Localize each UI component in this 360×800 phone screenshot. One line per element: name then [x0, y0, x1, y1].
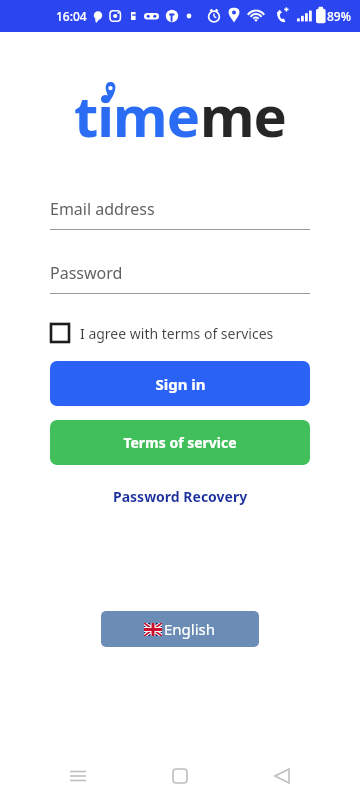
button[interactable]: Back: [258, 752, 306, 800]
button[interactable]: I agree with terms of services: [50, 323, 310, 343]
button[interactable]: English: [101, 611, 259, 647]
button[interactable]: Sign in: [50, 361, 310, 406]
staticText: 89%: [327, 8, 351, 24]
button[interactable]: Email address: [50, 198, 310, 230]
button[interactable]: Password Recovery: [0, 487, 360, 506]
staticText: me: [200, 77, 287, 153]
staticText: time: [74, 77, 200, 153]
button[interactable]: Recent apps: [54, 752, 102, 800]
button[interactable]: Home: [156, 752, 204, 800]
staticText: Sign in: [155, 374, 206, 394]
staticText: English: [164, 619, 216, 639]
button[interactable]: Password: [50, 262, 310, 294]
staticText: Password Recovery: [113, 487, 248, 506]
staticText: 16:04: [56, 8, 87, 24]
staticText: Email address: [50, 198, 155, 220]
staticText: Terms of service: [123, 433, 237, 452]
button[interactable]: Terms of service: [50, 420, 310, 465]
staticText: I agree with terms of services: [80, 324, 274, 343]
staticText: Password: [50, 262, 123, 284]
